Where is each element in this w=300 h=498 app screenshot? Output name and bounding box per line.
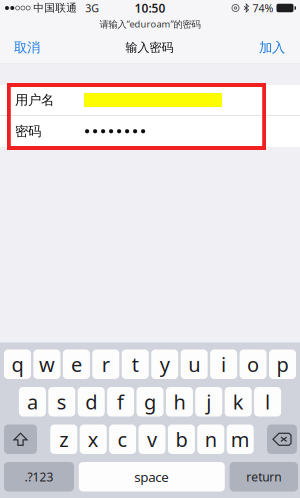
staticText: x [88, 426, 99, 453]
staticText: 请输入“eduroam”的密码 [99, 18, 200, 30]
staticText: f [117, 388, 124, 415]
staticText: 3G [85, 1, 99, 15]
staticText: e [71, 351, 82, 378]
staticText: return [246, 469, 281, 485]
staticText: 密码 [15, 123, 41, 139]
staticText: t [132, 351, 139, 378]
button[interactable]: n [197, 424, 224, 454]
button[interactable]: d [78, 387, 105, 416]
button[interactable]: t [122, 349, 149, 379]
button[interactable]: k [225, 387, 252, 416]
button[interactable]: g [136, 387, 163, 416]
button[interactable]: y [151, 349, 178, 379]
button[interactable]: r [92, 349, 119, 379]
staticText: k [233, 388, 244, 415]
staticText: b [175, 426, 187, 453]
button[interactable]: Delete [267, 424, 297, 454]
staticText: s [57, 388, 67, 415]
staticText: w [39, 351, 55, 378]
button[interactable]: c [109, 424, 136, 454]
staticText: u [188, 351, 200, 378]
staticText: g [144, 388, 156, 415]
button[interactable]: 加入 [249, 32, 300, 63]
button[interactable]: 取消 [0, 32, 50, 63]
staticText: m [231, 426, 250, 453]
button[interactable]: m [227, 424, 254, 454]
button[interactable]: v [138, 424, 165, 454]
button[interactable]: h [166, 387, 193, 416]
staticText: d [85, 388, 97, 415]
staticText: space [134, 468, 169, 486]
staticText: 74% [252, 1, 273, 15]
button[interactable]: i [210, 349, 237, 379]
staticText: 输入密码 [125, 40, 173, 55]
staticText: h [173, 388, 185, 415]
button[interactable]: e [63, 349, 90, 379]
button[interactable]: w [33, 349, 60, 379]
staticText: v [147, 426, 157, 453]
staticText: 10:50 [134, 0, 165, 16]
staticText: 用户名 [15, 92, 54, 108]
staticText: y [160, 351, 170, 378]
button[interactable]: b [168, 424, 195, 454]
button[interactable]: u [181, 349, 208, 379]
staticText: q [11, 351, 23, 378]
staticText: .?123 [24, 469, 53, 485]
button[interactable]: q [4, 349, 31, 379]
button[interactable]: space [79, 462, 225, 491]
button[interactable]: l [254, 387, 281, 416]
staticText: j [206, 388, 211, 415]
staticText: z [59, 426, 68, 453]
staticText: c [118, 426, 128, 453]
button[interactable]: j [195, 387, 222, 416]
staticText: r [102, 351, 110, 378]
button[interactable]: .?123 [4, 462, 74, 491]
staticText: 取消 [14, 39, 40, 56]
button[interactable]: p [269, 349, 296, 379]
staticText: n [205, 426, 217, 453]
button[interactable]: o [240, 349, 267, 379]
staticText: 中国联通 [33, 1, 77, 14]
staticText: l [265, 388, 270, 415]
staticText: a [27, 388, 38, 415]
button[interactable]: z [50, 424, 77, 454]
button[interactable]: return [230, 462, 298, 491]
staticText: p [276, 351, 288, 378]
staticText: o [247, 351, 259, 378]
button[interactable]: f [107, 387, 134, 416]
button[interactable]: s [48, 387, 75, 416]
button[interactable]: x [80, 424, 107, 454]
staticText: i [221, 351, 226, 378]
staticText: 加入 [259, 39, 285, 56]
button[interactable]: Shift [4, 424, 37, 454]
button[interactable]: a [19, 387, 46, 416]
